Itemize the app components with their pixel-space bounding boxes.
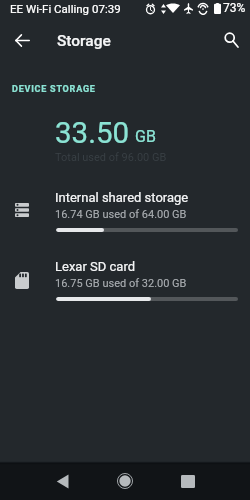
button[interactable]: Back (10, 28, 34, 52)
staticText: GB (135, 127, 156, 146)
staticText: EE Wi-Fi Calling (10, 2, 90, 15)
staticText: 07:39 (92, 2, 121, 15)
staticText: 73% (223, 1, 246, 15)
button[interactable]: Search (219, 28, 243, 52)
staticText: Storage (57, 32, 111, 50)
staticText: 16.75 GB used of 32.00 GB (55, 277, 187, 290)
button[interactable]: Back (49, 468, 75, 494)
button[interactable]: Recent apps (175, 468, 201, 494)
button[interactable]: Home (112, 468, 138, 494)
staticText: Internal shared storage (55, 190, 189, 205)
button[interactable]: Lexar SD card (0, 249, 250, 318)
staticText: DEVICE STORAGE (12, 84, 96, 95)
staticText: 16.74 GB used of 64.00 GB (55, 208, 187, 221)
staticText: 33.50 (55, 116, 130, 151)
staticText: Total used of 96.00 GB (55, 151, 167, 164)
staticText: Lexar SD card (55, 259, 136, 274)
button[interactable]: Internal shared storage (0, 180, 250, 249)
